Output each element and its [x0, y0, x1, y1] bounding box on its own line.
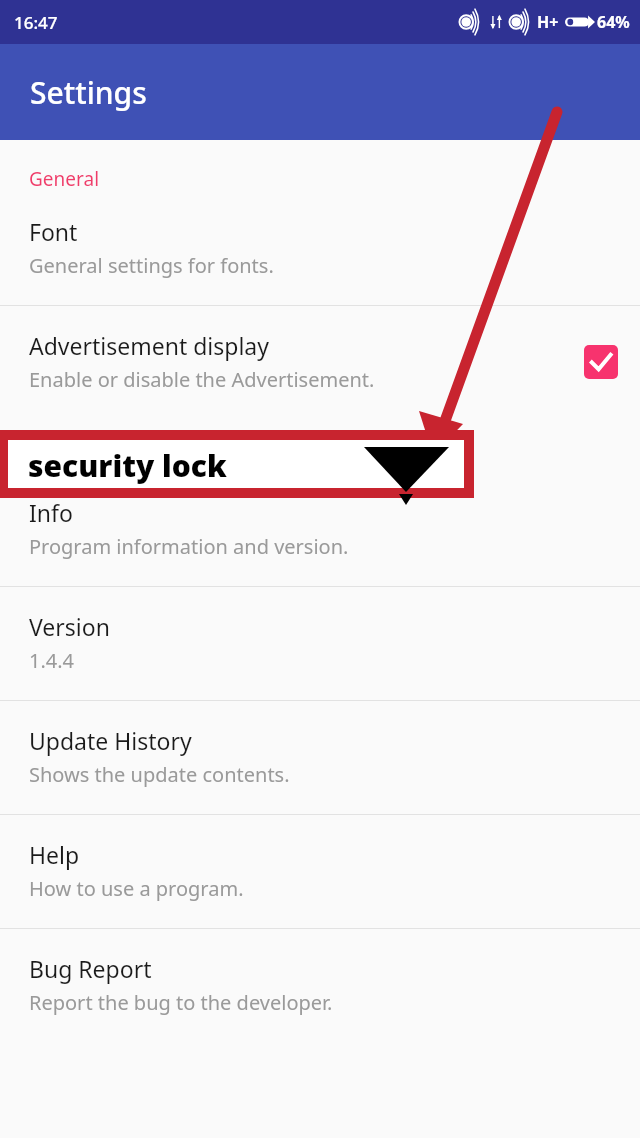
staticText: Info: [29, 497, 73, 528]
button[interactable]: Info: [0, 475, 640, 586]
staticText: Program Information: [29, 445, 640, 471]
staticText: 16:47: [14, 11, 58, 34]
staticText: H+: [537, 11, 559, 33]
button[interactable]: Advertisement display enabled: [584, 345, 618, 379]
staticText: General: [29, 166, 640, 192]
staticText: Help: [29, 839, 80, 870]
staticText: How to use a program.: [29, 875, 244, 902]
button[interactable]: Bug Report: [0, 929, 640, 1042]
staticText: Update History: [29, 725, 192, 756]
staticText: Enable or disable the Advertisement.: [29, 366, 375, 393]
staticText: Version: [29, 611, 110, 642]
staticText: 1.4.4: [29, 647, 75, 674]
button[interactable]: Version: [0, 587, 640, 700]
staticText: Shows the update contents.: [29, 761, 290, 788]
staticText: Settings: [30, 72, 147, 113]
staticText: Bug Report: [29, 953, 152, 984]
staticText: Font: [29, 216, 78, 247]
staticText: Advertisement display: [29, 330, 270, 361]
staticText: Program information and version.: [29, 533, 349, 560]
staticText: security lock: [28, 445, 227, 486]
staticText: 64%: [597, 11, 630, 33]
button[interactable]: Help: [0, 815, 640, 928]
staticText: General settings for fonts.: [29, 252, 274, 279]
button[interactable]: Font: [0, 196, 640, 305]
button[interactable]: Update History: [0, 701, 640, 814]
staticText: Report the bug to the developer.: [29, 989, 333, 1016]
button[interactable]: Advertisement display: [0, 306, 640, 419]
